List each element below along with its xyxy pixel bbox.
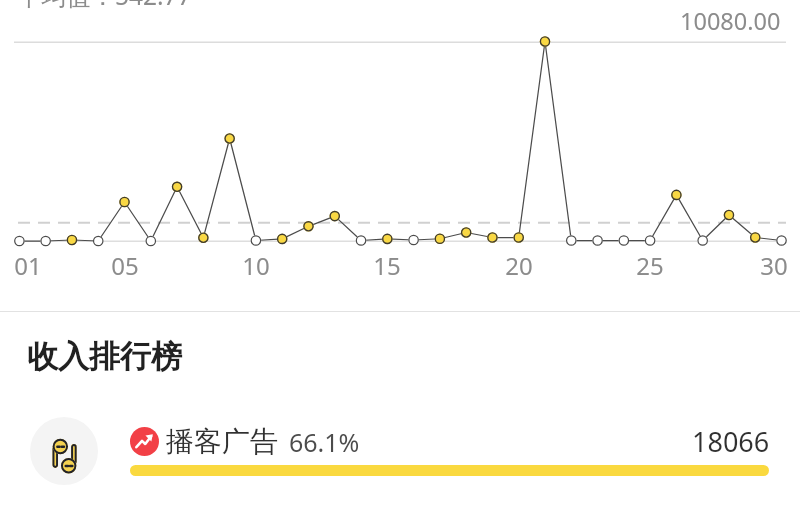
staticText: 30 [760,249,788,282]
staticText: 15 [373,249,401,282]
staticText: 20 [505,249,533,282]
staticText: 25 [636,249,664,282]
other: 趋势上升 [130,427,159,456]
button[interactable]: 收入排行榜 [27,337,182,376]
staticText: 收入排行榜 [27,337,182,376]
staticText: 平均值：542.77 [17,0,192,12]
staticText: 播客广告 [166,424,278,459]
staticText: 10080.00 [680,5,781,37]
staticText: 66.1% [289,425,360,459]
button[interactable]: 趋势上升 [0,405,800,500]
staticText: 18066 [692,423,770,460]
staticText: 10 [242,249,270,282]
staticText: 05 [111,249,139,282]
staticText: 01 [14,249,42,282]
